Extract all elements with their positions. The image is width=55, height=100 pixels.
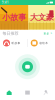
button[interactable]: Profile	[37, 85, 55, 100]
button[interactable]: 听故事	[0, 37, 27, 48]
button[interactable]: 更多 >	[43, 32, 52, 35]
staticText: 听故事	[11, 41, 20, 45]
staticText: 更多 >	[43, 32, 52, 35]
button[interactable]: 大文豪	[28, 5, 55, 29]
staticText: 读绘本	[39, 41, 48, 45]
button[interactable]: Record	[14, 54, 40, 80]
button[interactable]: Home	[0, 85, 18, 100]
staticText: 每日推荐	[2, 31, 18, 36]
staticText: 9:41	[2, 1, 9, 4]
button[interactable]: 小故事	[0, 5, 28, 29]
staticText: 大文豪	[30, 12, 54, 22]
button[interactable]: 读绘本	[28, 37, 55, 48]
staticText: 小故事	[2, 12, 26, 22]
button[interactable]: Library	[18, 85, 37, 100]
